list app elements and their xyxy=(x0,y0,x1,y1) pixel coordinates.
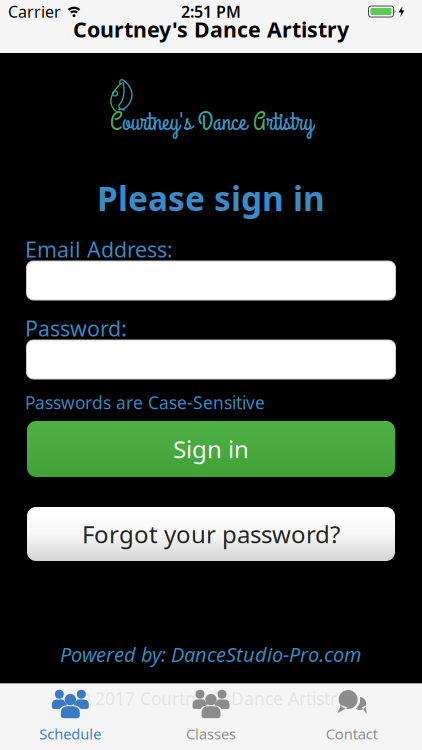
button[interactable]: Forgot your password? xyxy=(27,507,395,561)
staticText: Carrier xyxy=(8,1,61,22)
staticText: A xyxy=(253,105,266,139)
staticText: Courtney's Dance Artistry xyxy=(73,15,349,43)
button[interactable]: Classes xyxy=(141,683,281,748)
button[interactable]: Powered by: DanceStudio-Pro.com xyxy=(60,641,362,668)
button[interactable]: Schedule xyxy=(0,683,141,748)
staticText: C xyxy=(110,105,122,139)
staticText: Passwords are Case-Sensitive xyxy=(25,391,265,414)
button[interactable]: Password xyxy=(26,340,395,379)
staticText: Classes xyxy=(186,724,236,743)
button[interactable]: Sign in xyxy=(27,421,395,477)
button[interactable]: Contact xyxy=(281,683,422,748)
staticText: ourtney's xyxy=(122,105,198,139)
staticText: rtistry xyxy=(266,105,313,139)
staticText: Powered by: DanceStudio-Pro.com xyxy=(60,641,362,668)
staticText: Please sign in xyxy=(97,176,325,220)
button[interactable]: Email Address xyxy=(26,261,395,300)
staticText: Password: xyxy=(25,314,127,342)
staticText: Email Address: xyxy=(25,235,173,263)
staticText: Forgot your password? xyxy=(82,518,340,550)
staticText: Contact xyxy=(326,724,378,743)
staticText: D xyxy=(198,105,213,139)
staticText: Sign in xyxy=(173,433,249,465)
staticText: © 2017 Courtney's Dance Artistry xyxy=(76,687,346,710)
staticText: 2:51 PM xyxy=(181,1,241,22)
staticText: Schedule xyxy=(39,724,101,743)
staticText: ance xyxy=(213,105,253,139)
